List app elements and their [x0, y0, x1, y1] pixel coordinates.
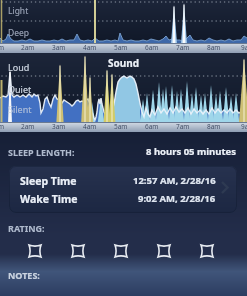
staticText: NOTES: [8, 269, 40, 281]
staticText: RATING: [8, 222, 45, 234]
staticText: Sleep Time [20, 174, 77, 188]
staticText: 2am [21, 43, 35, 52]
staticText: Quiet [8, 83, 32, 95]
staticText: 9a [241, 122, 247, 131]
staticText: Sound [108, 56, 140, 70]
button[interactable] [114, 244, 128, 258]
staticText: 9a [241, 43, 247, 52]
staticText: 4am [83, 122, 97, 131]
staticText: Wake Time [20, 192, 78, 206]
staticText: Deep [8, 27, 30, 39]
staticText: 3am [52, 122, 66, 131]
staticText: 8am [207, 122, 221, 131]
staticText: m [0, 122, 5, 131]
staticText: Light [8, 5, 29, 17]
staticText: 8 hours 05 minutes [146, 145, 237, 158]
button[interactable] [28, 244, 42, 258]
button[interactable] [157, 244, 171, 258]
staticText: 5am [114, 122, 128, 131]
staticText: 5am [114, 43, 128, 52]
staticText: m [0, 43, 5, 52]
staticText: 3am [52, 43, 66, 52]
staticText: 7am [176, 122, 190, 131]
staticText: SLEEP LENGTH: [8, 146, 75, 158]
staticText: Silent [8, 103, 32, 115]
button[interactable] [200, 244, 214, 258]
staticText: 7am [176, 43, 190, 52]
staticText: 9:02 AM, 2/28/16 [138, 192, 216, 205]
button[interactable] [71, 244, 85, 258]
staticText: 8am [207, 43, 221, 52]
staticText: 12:57 AM, 2/28/16 [133, 174, 216, 187]
staticText: 6am [145, 122, 159, 131]
staticText: 2am [21, 122, 35, 131]
staticText: Loud [8, 61, 30, 73]
button[interactable]: Sleep Time [9, 166, 237, 213]
staticText: 4am [83, 43, 97, 52]
staticText: 6am [145, 43, 159, 52]
